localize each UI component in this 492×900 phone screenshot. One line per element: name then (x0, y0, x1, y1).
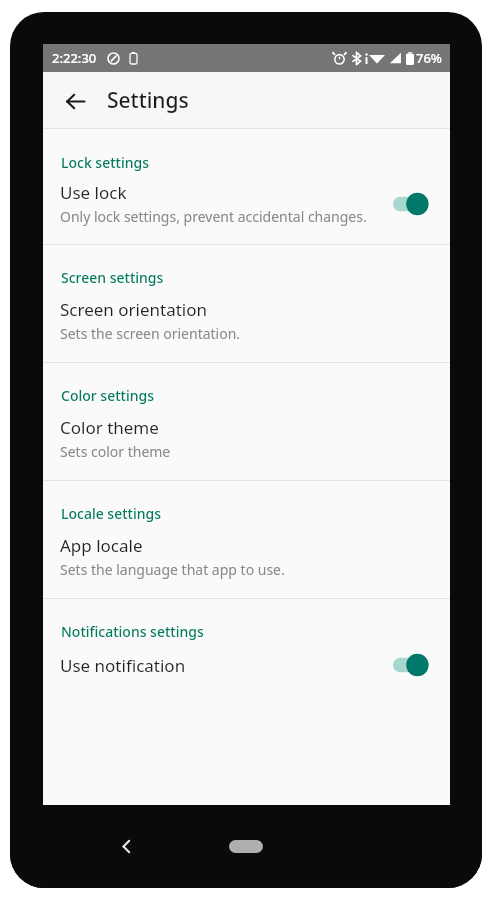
button[interactable]: Use notification (43, 641, 450, 680)
button[interactable]: Toggle (392, 189, 438, 219)
staticText: Sets the language that app to use. (60, 560, 285, 579)
staticText: 76% (416, 49, 442, 67)
staticText: Locale settings (61, 504, 161, 523)
staticText: Screen settings (61, 268, 164, 287)
staticText: App locale (60, 534, 143, 557)
button[interactable]: App locale (43, 523, 450, 598)
staticText: Only lock settings, prevent accidental c… (60, 207, 367, 226)
staticText: 2:22:30 (52, 49, 97, 67)
staticText: Use lock (60, 181, 127, 204)
button[interactable]: Use lock (43, 172, 450, 244)
staticText: Color theme (60, 416, 159, 439)
staticText: Sets color theme (60, 442, 171, 461)
staticText: Settings (107, 86, 189, 115)
staticText: Color settings (61, 386, 154, 405)
button[interactable]: Back (53, 79, 97, 123)
button[interactable]: Screen orientation (43, 287, 450, 362)
button[interactable]: Color theme (43, 405, 450, 480)
button[interactable]: Home (224, 834, 268, 858)
staticText: Notifications settings (61, 622, 204, 641)
staticText: Use notification (60, 654, 392, 677)
staticText: Lock settings (61, 153, 149, 172)
button[interactable]: Toggle (392, 650, 438, 680)
staticText: Sets the screen orientation. (60, 324, 241, 343)
button[interactable]: Back (106, 826, 146, 866)
staticText: Screen orientation (60, 298, 208, 321)
